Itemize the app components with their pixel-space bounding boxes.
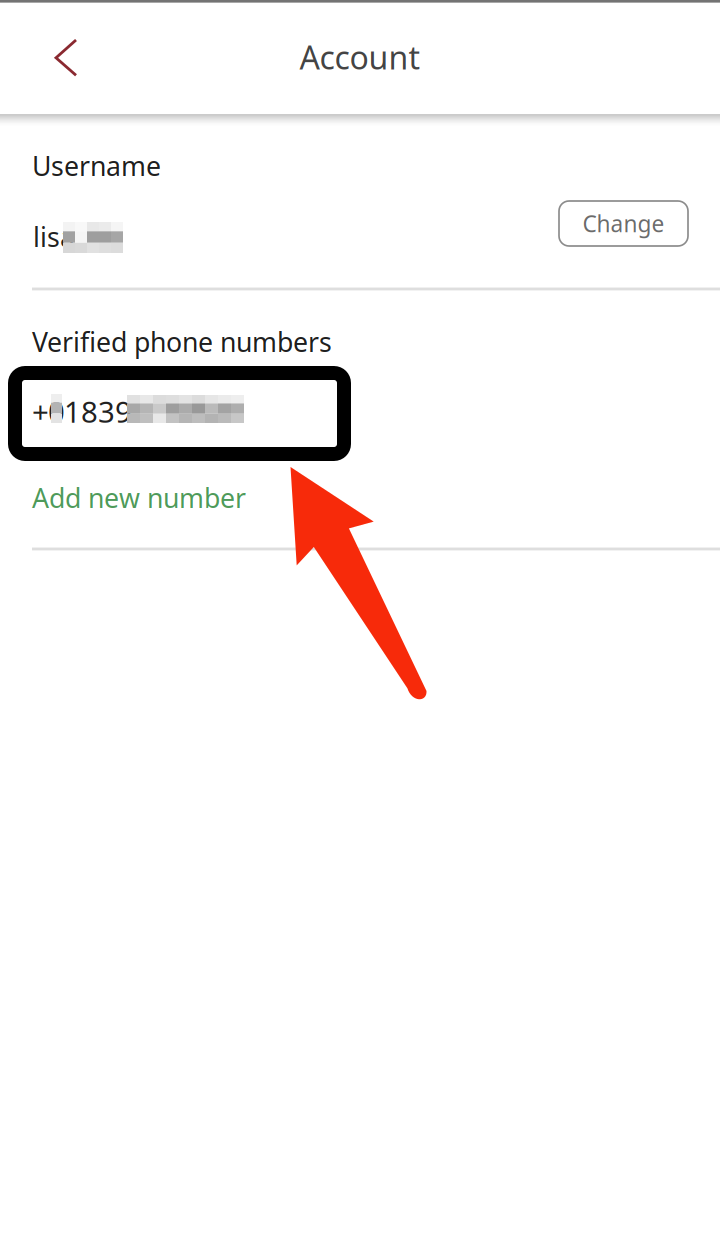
button[interactable]: Change	[559, 201, 688, 246]
staticText: Username	[32, 148, 161, 183]
button[interactable]: Add new number	[32, 480, 246, 515]
staticText: Account	[299, 36, 420, 78]
button[interactable]: Back	[27, 19, 105, 97]
staticText: 1839	[64, 392, 132, 431]
staticText: 0	[48, 392, 65, 431]
staticText: Change	[582, 208, 664, 238]
staticText: +	[32, 392, 49, 431]
button[interactable]: +	[32, 381, 720, 448]
staticText: Add new number	[32, 480, 246, 515]
staticText: lisa	[33, 219, 75, 254]
staticText: Verified phone numbers	[32, 324, 332, 359]
